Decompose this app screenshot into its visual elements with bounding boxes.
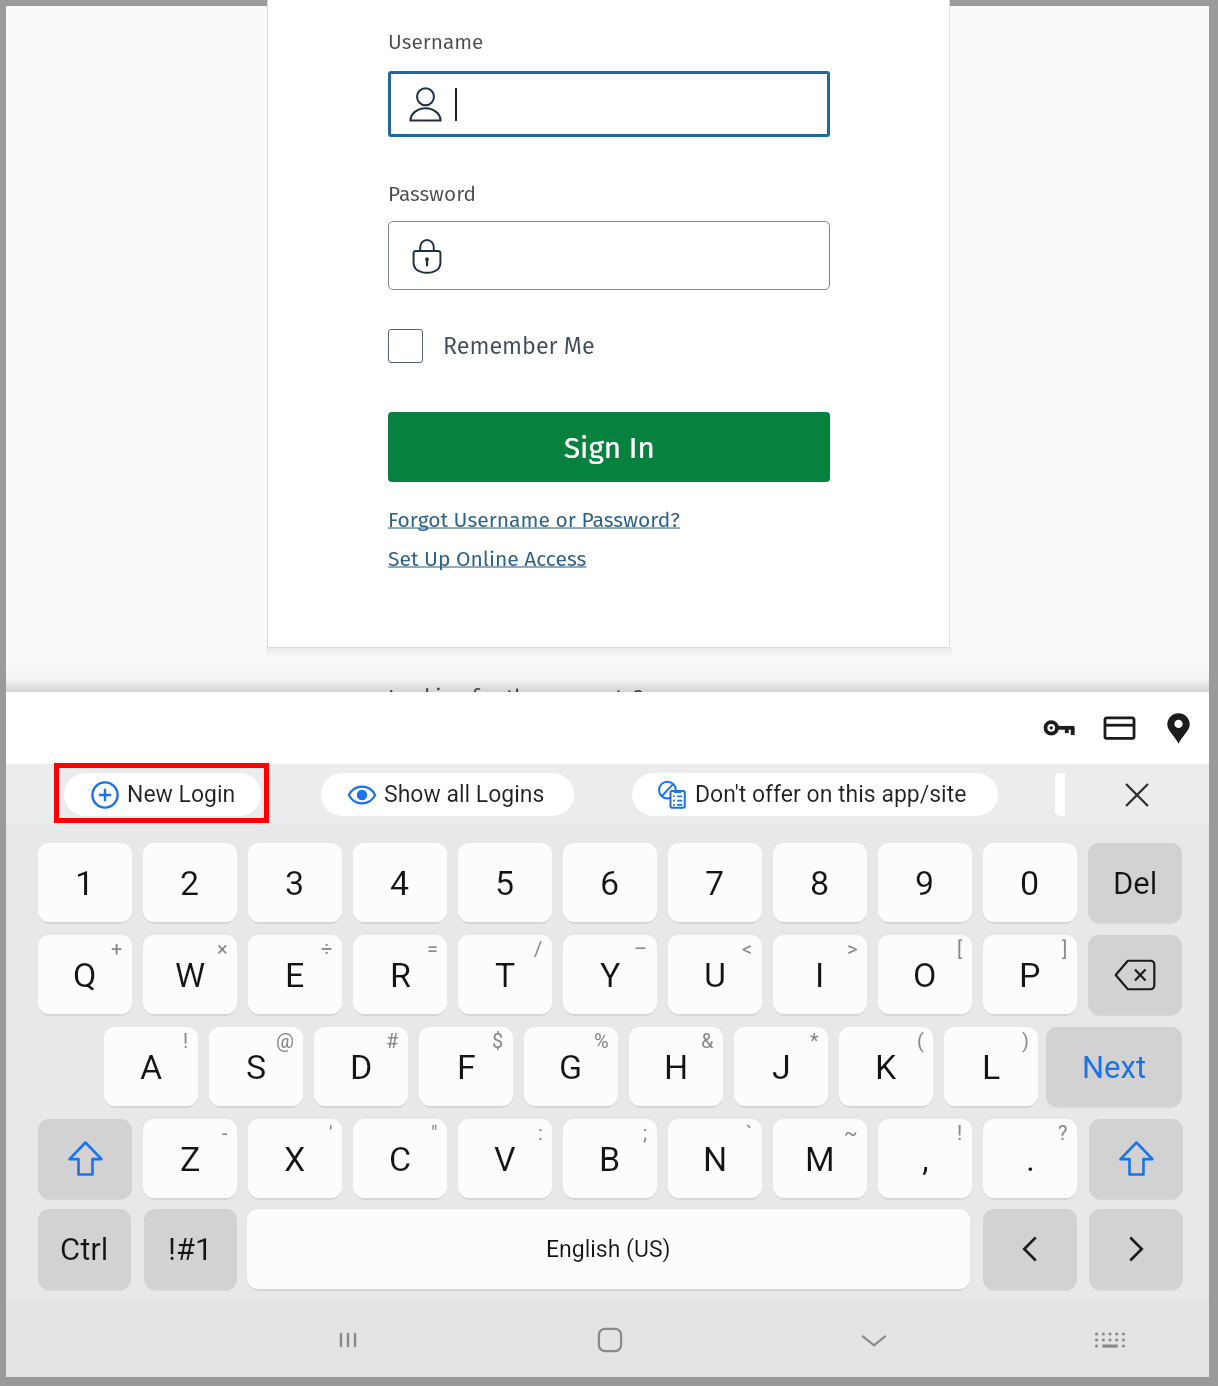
button[interactable]: W xyxy=(143,935,237,1014)
button[interactable]: I xyxy=(773,935,867,1014)
button[interactable]: Backspace xyxy=(1088,935,1182,1014)
button[interactable]: N xyxy=(668,1119,762,1198)
button[interactable]: New Login xyxy=(64,773,261,816)
button[interactable]: Y xyxy=(563,935,657,1014)
staticText: O xyxy=(913,955,937,995)
button[interactable]: P xyxy=(983,935,1077,1014)
staticText: ; xyxy=(643,1121,648,1144)
button[interactable]: B xyxy=(563,1119,657,1198)
button[interactable]: Set Up Online Access xyxy=(388,546,587,571)
staticText: A xyxy=(140,1047,163,1087)
button[interactable]: Forgot Username or Password? xyxy=(388,507,680,532)
button[interactable]: C xyxy=(353,1119,447,1198)
button[interactable]: S xyxy=(209,1027,303,1106)
staticText: 8 xyxy=(810,863,830,903)
button[interactable]: L xyxy=(944,1027,1038,1106)
button[interactable]: R xyxy=(353,935,447,1014)
button[interactable]: Shift xyxy=(1089,1119,1183,1198)
staticText: : xyxy=(538,1121,543,1144)
button[interactable]: 7 xyxy=(668,843,762,922)
staticText: @ xyxy=(276,1029,294,1052)
button[interactable]: 2 xyxy=(143,843,237,922)
button[interactable]: A xyxy=(104,1027,198,1106)
button[interactable]: Move cursor right xyxy=(1089,1209,1183,1289)
button[interactable]: Show all Logins xyxy=(321,773,574,816)
staticText: M xyxy=(805,1139,835,1179)
staticText: & xyxy=(701,1029,714,1052)
button[interactable]: !#1 xyxy=(144,1209,237,1289)
button[interactable]: D xyxy=(314,1027,408,1106)
button[interactable]: 4 xyxy=(353,843,447,922)
staticText: N xyxy=(703,1139,728,1179)
staticText: E xyxy=(285,955,305,995)
button[interactable]: , xyxy=(878,1119,972,1198)
staticText: , xyxy=(922,1139,929,1179)
button[interactable]: Close xyxy=(1111,769,1163,821)
staticText: > xyxy=(847,937,858,960)
button[interactable]: Z xyxy=(143,1119,237,1198)
button[interactable]: Home xyxy=(580,1310,640,1370)
staticText: * xyxy=(810,1029,819,1052)
button[interactable]: Username xyxy=(388,71,830,137)
staticText: S xyxy=(246,1047,267,1087)
button[interactable]: 6 xyxy=(563,843,657,922)
button[interactable]: F xyxy=(419,1027,513,1106)
button[interactable]: 9 xyxy=(878,843,972,922)
button[interactable]: Move cursor left xyxy=(983,1209,1077,1289)
staticText: 7 xyxy=(705,863,725,903)
staticText: P xyxy=(1019,955,1041,995)
staticText: ] xyxy=(1062,937,1068,960)
staticText: W xyxy=(175,955,206,995)
staticText: Next xyxy=(1082,1049,1147,1085)
button[interactable]: X xyxy=(248,1119,342,1198)
button[interactable]: Next xyxy=(1046,1027,1182,1106)
button[interactable]: G xyxy=(524,1027,618,1106)
button[interactable]: H xyxy=(629,1027,723,1106)
button[interactable]: 0 xyxy=(983,843,1077,922)
button[interactable]: Passwords xyxy=(1033,702,1085,754)
button[interactable]: Ctrl xyxy=(38,1209,131,1289)
button[interactable]: Addresses xyxy=(1152,702,1204,754)
staticText: ( xyxy=(917,1029,924,1052)
button[interactable]: . xyxy=(983,1119,1077,1198)
button[interactable]: J xyxy=(734,1027,828,1106)
button[interactable]: Don't offer on this app/site xyxy=(632,773,998,816)
button[interactable]: T xyxy=(458,935,552,1014)
button[interactable]: Hide keyboard xyxy=(844,1310,904,1370)
staticText: D xyxy=(350,1047,373,1087)
button[interactable]: 1 xyxy=(38,843,132,922)
staticText: Show all Logins xyxy=(384,781,545,808)
staticText: K xyxy=(875,1047,897,1087)
button[interactable]: V xyxy=(458,1119,552,1198)
button[interactable]: 5 xyxy=(458,843,552,922)
button[interactable]: Remember Me xyxy=(388,329,595,363)
staticText: New Login xyxy=(127,781,236,808)
button[interactable]: English (US) xyxy=(247,1209,970,1289)
staticText: Y xyxy=(600,955,621,995)
button[interactable]: K xyxy=(839,1027,933,1106)
button[interactable]: O xyxy=(878,935,972,1014)
staticText: < xyxy=(742,937,753,960)
staticText: ÷ xyxy=(321,937,333,960)
staticText: ' xyxy=(329,1121,333,1144)
button[interactable]: 8 xyxy=(773,843,867,922)
button[interactable]: Password xyxy=(388,221,830,290)
button[interactable]: Shift xyxy=(38,1119,132,1198)
button[interactable]: Q xyxy=(38,935,132,1014)
button[interactable]: Del xyxy=(1088,843,1182,922)
button[interactable]: Sign In xyxy=(388,412,830,482)
button[interactable]: E xyxy=(248,935,342,1014)
staticText: ? xyxy=(1058,1121,1068,1144)
staticText: " xyxy=(431,1121,438,1144)
button[interactable]: U xyxy=(668,935,762,1014)
button[interactable]: M xyxy=(773,1119,867,1198)
button[interactable]: Change keyboard xyxy=(1080,1310,1140,1370)
button[interactable]: Recents xyxy=(318,1310,378,1370)
button[interactable]: Payment methods xyxy=(1093,702,1145,754)
staticText: V xyxy=(494,1139,516,1179)
staticText: % xyxy=(594,1029,609,1052)
button[interactable]: 3 xyxy=(248,843,342,922)
staticText: R xyxy=(390,955,411,995)
staticText: Looking for the accounts? xyxy=(388,684,644,710)
